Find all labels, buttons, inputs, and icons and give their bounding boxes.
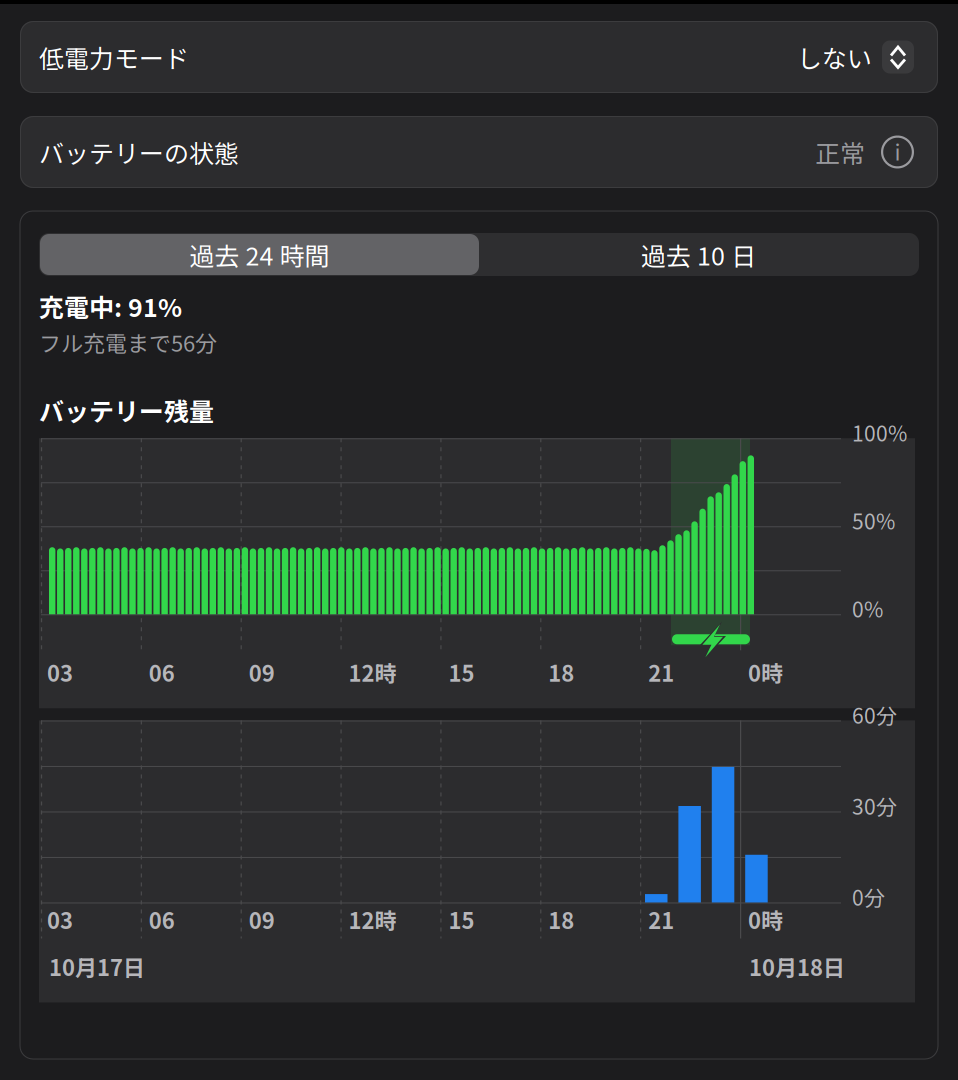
staticText: 03 <box>47 656 73 688</box>
staticText: 18 <box>548 656 574 688</box>
staticText: 充電中: 91% <box>39 288 182 324</box>
staticText: バッテリー残量 <box>39 392 214 428</box>
staticText: 10月17日 <box>49 950 145 982</box>
staticText: 06 <box>149 656 175 688</box>
staticText: 100% <box>852 417 907 448</box>
staticText: 21 <box>648 903 674 935</box>
staticText: 過去 24 時間 <box>189 236 329 273</box>
staticText: 06 <box>149 903 175 935</box>
staticText: 50% <box>852 505 895 536</box>
staticText: 低電力モード <box>39 39 189 75</box>
staticText: 30分 <box>852 790 897 821</box>
staticText: バッテリーの状態 <box>39 134 239 170</box>
staticText: 12時 <box>349 903 397 935</box>
staticText: 15 <box>448 903 474 935</box>
button[interactable]: 低電力モード <box>20 21 938 93</box>
staticText: しない <box>797 39 872 75</box>
staticText: 60分 <box>852 699 897 730</box>
staticText: 0時 <box>748 903 783 935</box>
staticText: 09 <box>249 903 275 935</box>
staticText: 03 <box>47 903 73 935</box>
staticText: i <box>894 135 900 167</box>
staticText: 18 <box>548 903 574 935</box>
staticText: 過去 10 日 <box>641 236 756 273</box>
staticText: 12時 <box>349 656 397 688</box>
staticText: 正常 <box>815 134 865 170</box>
staticText: 09 <box>249 656 275 688</box>
staticText: 0分 <box>852 881 885 912</box>
button[interactable]: 過去 10 日 <box>479 234 918 275</box>
button[interactable]: 過去 24 時間 <box>40 234 479 275</box>
button[interactable]: バッテリーの状態 <box>20 116 938 188</box>
staticText: 15 <box>448 656 474 688</box>
staticText: フル充電まで56分 <box>39 326 217 358</box>
staticText: 21 <box>648 656 674 688</box>
staticText: 10月18日 <box>749 950 845 982</box>
staticText: 0時 <box>748 656 783 688</box>
staticText: 0% <box>852 593 883 624</box>
